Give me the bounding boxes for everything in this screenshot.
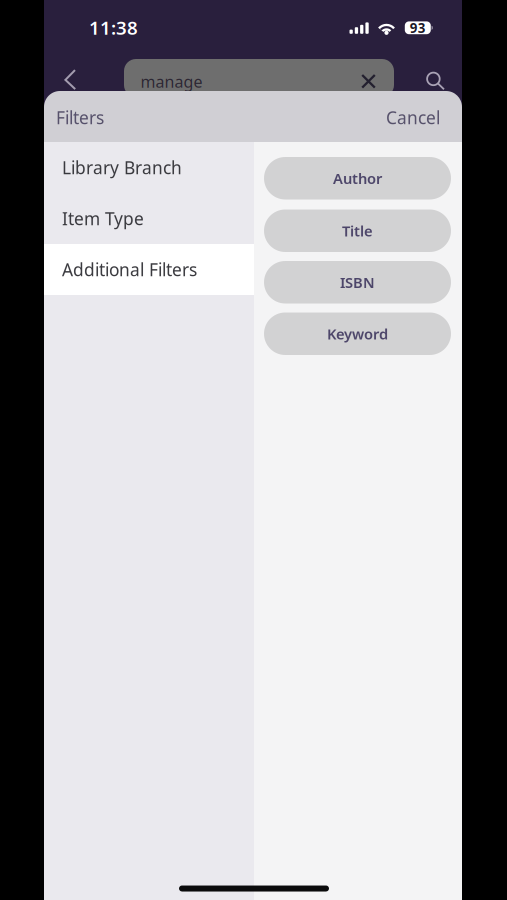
button[interactable]: ISBN	[264, 261, 451, 303]
staticText: 93	[410, 19, 426, 37]
button[interactable]: Author	[264, 157, 451, 199]
button[interactable]: Title	[264, 209, 451, 252]
button[interactable]: Keyword	[264, 312, 451, 355]
staticText: Author	[333, 168, 382, 188]
button[interactable]: Clear text	[352, 65, 385, 98]
staticText: Item Type	[62, 207, 144, 230]
button[interactable]: Library Branch	[44, 142, 254, 193]
button[interactable]: Additional Filters	[44, 244, 254, 295]
staticText: 11:38	[89, 15, 138, 40]
button[interactable]: Back	[55, 63, 85, 96]
staticText: ISBN	[340, 272, 375, 292]
staticText: Additional Filters	[62, 258, 197, 281]
staticText: Title	[342, 221, 373, 240]
button[interactable]: Search	[417, 63, 454, 99]
staticText: Filters	[56, 106, 104, 129]
staticText: Cancel	[386, 106, 440, 129]
staticText: Keyword	[327, 324, 388, 343]
staticText: Library Branch	[62, 156, 182, 179]
staticText: manage	[140, 71, 202, 92]
button[interactable]: Cancel	[375, 94, 451, 141]
button[interactable]: Item Type	[44, 193, 254, 244]
